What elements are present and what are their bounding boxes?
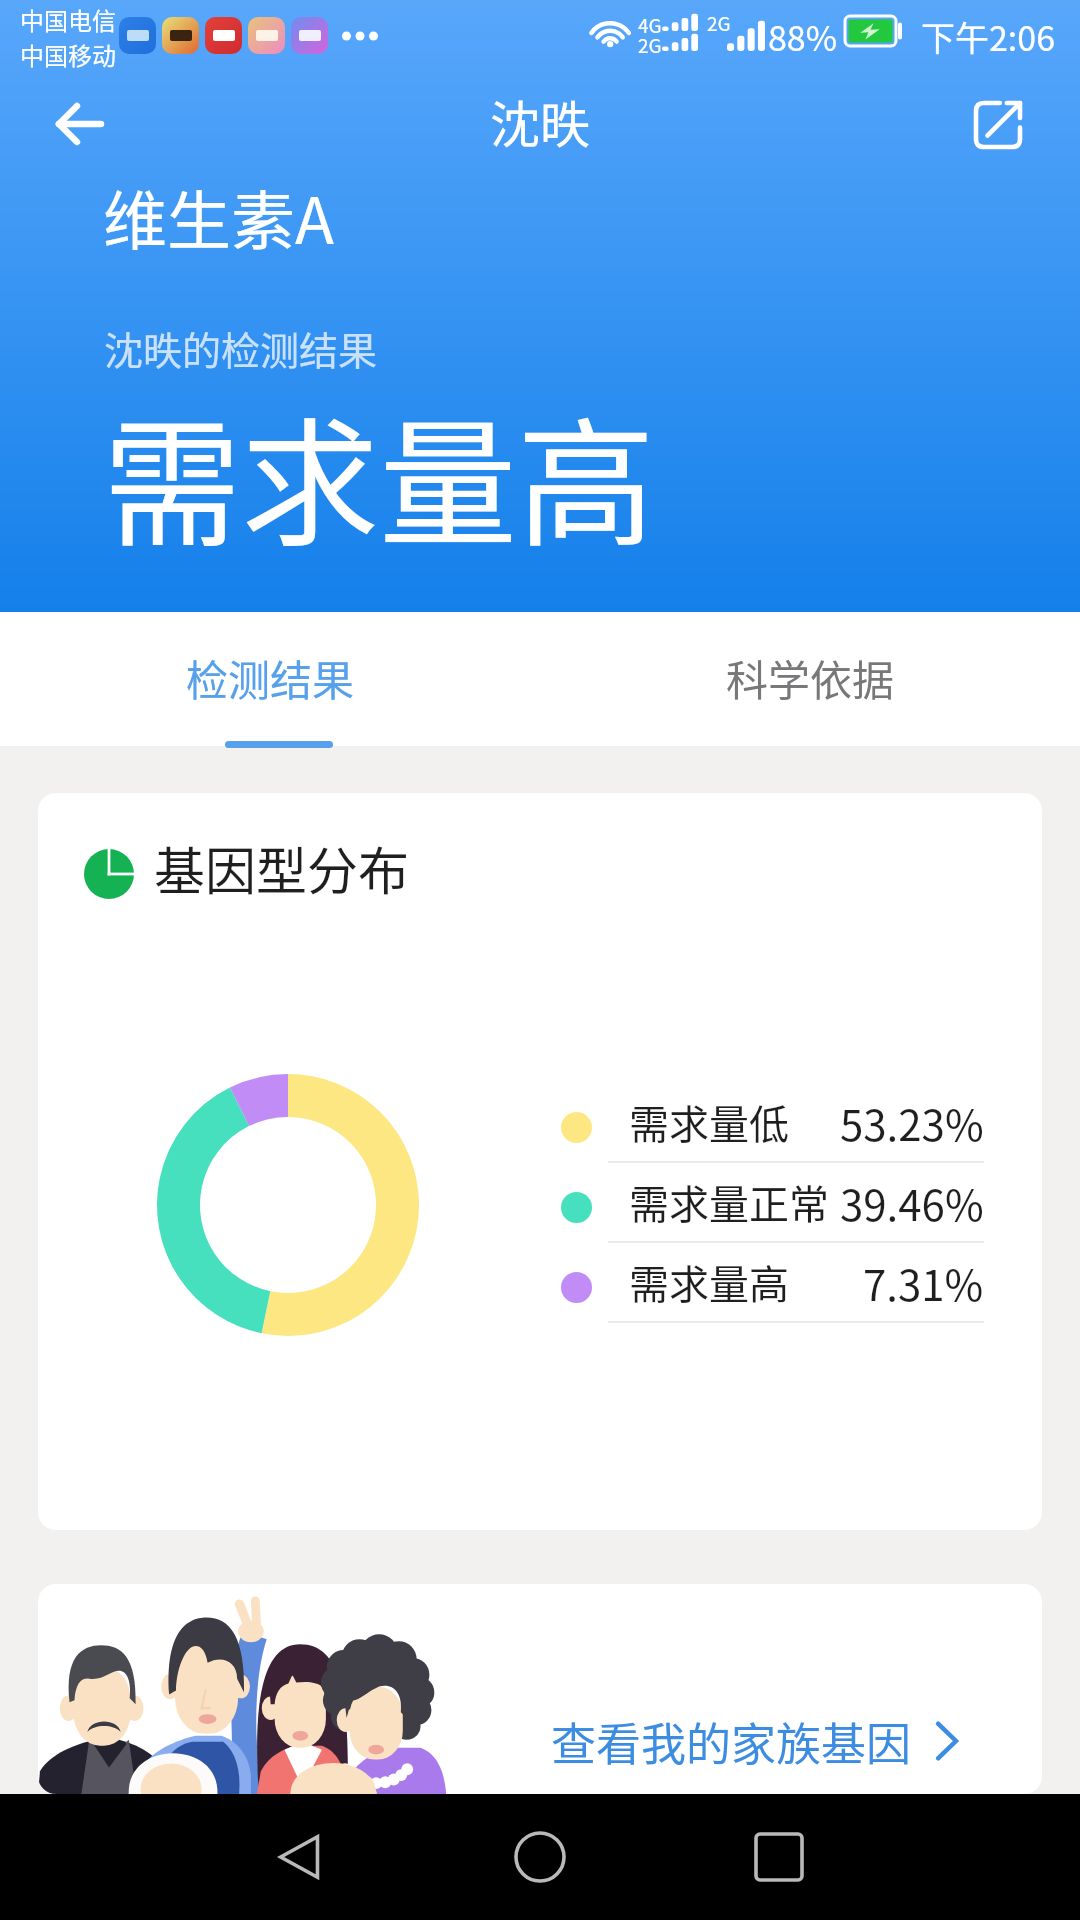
staticText: 维生素A [103, 170, 334, 263]
staticText: 2G [707, 9, 731, 37]
staticText: 中国电信 [20, 2, 116, 37]
staticText: 7.31% [863, 1252, 984, 1313]
button[interactable]: 科学依据 [540, 612, 1080, 746]
staticText: 沈昳的检测结果 [104, 320, 378, 376]
staticText: 检测结果 [186, 647, 355, 708]
staticText: 需求量低 [629, 1093, 789, 1151]
staticText: 53.23% [840, 1092, 984, 1153]
button[interactable]: 查看我的家族基因 [38, 1584, 1042, 1794]
staticText: 中国移动 [20, 37, 116, 72]
button[interactable]: 检测结果 [0, 612, 540, 746]
button[interactable]: Home [495, 1812, 585, 1902]
staticText: 查看我的家族基因 [551, 1709, 912, 1774]
staticText: 科学依据 [726, 647, 895, 708]
button[interactable]: Back [40, 84, 120, 164]
staticText: 下午2:06 [921, 12, 1056, 61]
staticText: 需求量高 [103, 374, 656, 574]
staticText: 需求量正常 [629, 1173, 829, 1231]
staticText: 4G [638, 11, 662, 39]
button[interactable]: Recents [734, 1812, 824, 1902]
staticText: 2G [638, 31, 662, 59]
button[interactable]: Share [966, 93, 1030, 157]
staticText: 88% [768, 12, 838, 61]
staticText: 沈昳 [490, 85, 590, 157]
staticText: 需求量高 [629, 1253, 789, 1311]
staticText: 39.46% [840, 1172, 984, 1233]
button[interactable]: Back [255, 1812, 345, 1902]
staticText: 基因型分布 [154, 831, 410, 905]
